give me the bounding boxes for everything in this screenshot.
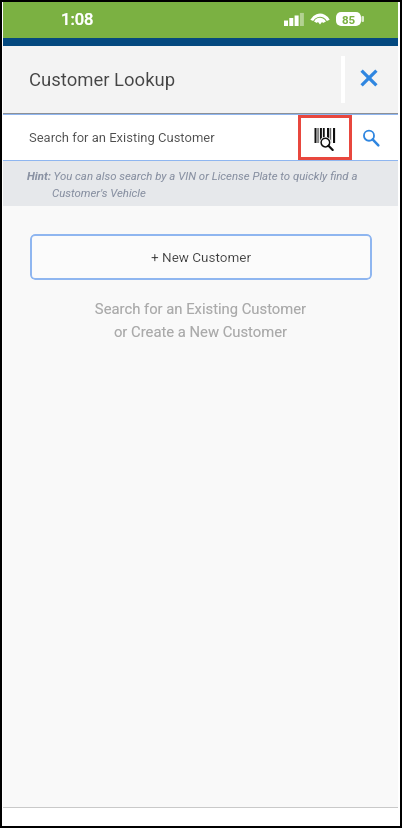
button[interactable]: Scan barcode: [298, 115, 352, 160]
button[interactable]: Search: [351, 115, 390, 160]
staticText: Customer's Vehicle: [52, 186, 146, 199]
staticText: Search for an Existing Customer or Creat…: [3, 300, 398, 341]
staticText: 85: [342, 13, 356, 26]
button[interactable]: + New Customer: [30, 234, 372, 280]
staticText: Search for an Existing Customer: [29, 130, 215, 145]
staticText: Hint: You can also search by a VIN or Li…: [27, 169, 358, 182]
button[interactable]: Close: [346, 55, 392, 101]
staticText: + New Customer: [151, 249, 252, 265]
staticText: Customer Lookup: [29, 69, 176, 91]
staticText: 1:08: [61, 10, 94, 29]
